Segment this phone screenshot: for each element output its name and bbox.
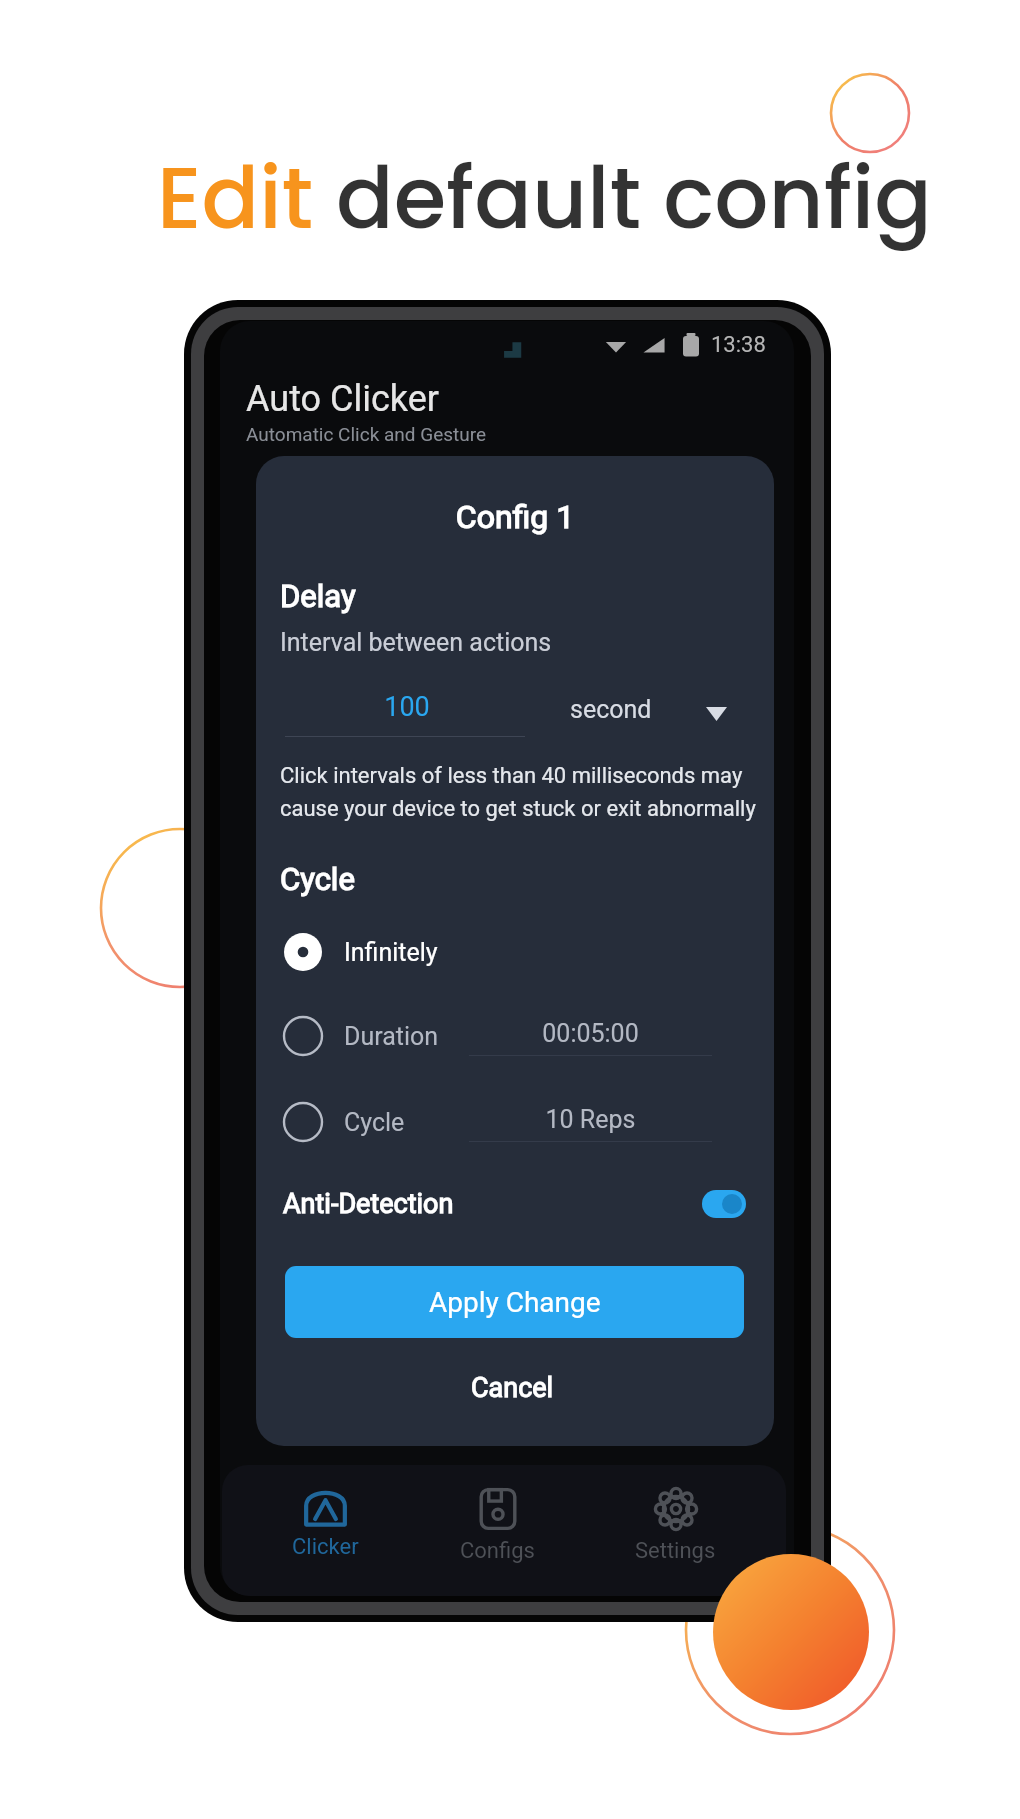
staticText: Edit [157, 139, 336, 258]
button[interactable]: Apply Change [285, 1266, 744, 1338]
staticText: Cycle [280, 861, 355, 897]
button[interactable]: Clicker [262, 1485, 389, 1562]
button[interactable]: Configs [430, 1485, 565, 1566]
staticText: Apply Change [429, 1286, 601, 1319]
staticText: Cancel [471, 1372, 554, 1404]
staticText: Configs [460, 1538, 535, 1564]
staticText: Duration [344, 1022, 439, 1051]
staticText: 00:05:00 [469, 1019, 712, 1048]
button[interactable]: Cancel [281, 1365, 744, 1411]
staticText: Delay [280, 578, 356, 614]
staticText: Click intervals of less than 40 millisec… [280, 763, 756, 821]
staticText: Config 1 [256, 498, 774, 536]
staticText: 100 [287, 691, 527, 723]
staticText: Automatic Click and Gesture [246, 423, 487, 445]
staticText: Interval between actions [280, 628, 552, 657]
button[interactable]: Duration [281, 1010, 747, 1062]
staticText: second [570, 695, 652, 724]
staticText: Settings [635, 1538, 716, 1564]
staticText: Auto Clicker [246, 378, 439, 420]
staticText: 13:38 [711, 332, 766, 358]
other: Settings [654, 1487, 698, 1531]
other: Clicker [303, 1487, 348, 1527]
button[interactable]: Anti-Detection [283, 1185, 746, 1223]
button[interactable]: Infinitely [281, 926, 747, 978]
staticText: Anti-Detection [283, 1188, 454, 1220]
staticText: default config [336, 139, 932, 258]
staticText: Infinitely [344, 938, 438, 967]
staticText: 10 Reps [469, 1105, 712, 1134]
other: Unit dropdown [706, 707, 727, 721]
other: Configs [477, 1487, 519, 1531]
staticText: Cycle [344, 1108, 405, 1137]
button[interactable]: Cycle [281, 1096, 747, 1148]
button[interactable]: Settings [605, 1485, 746, 1566]
staticText: Clicker [292, 1534, 359, 1560]
